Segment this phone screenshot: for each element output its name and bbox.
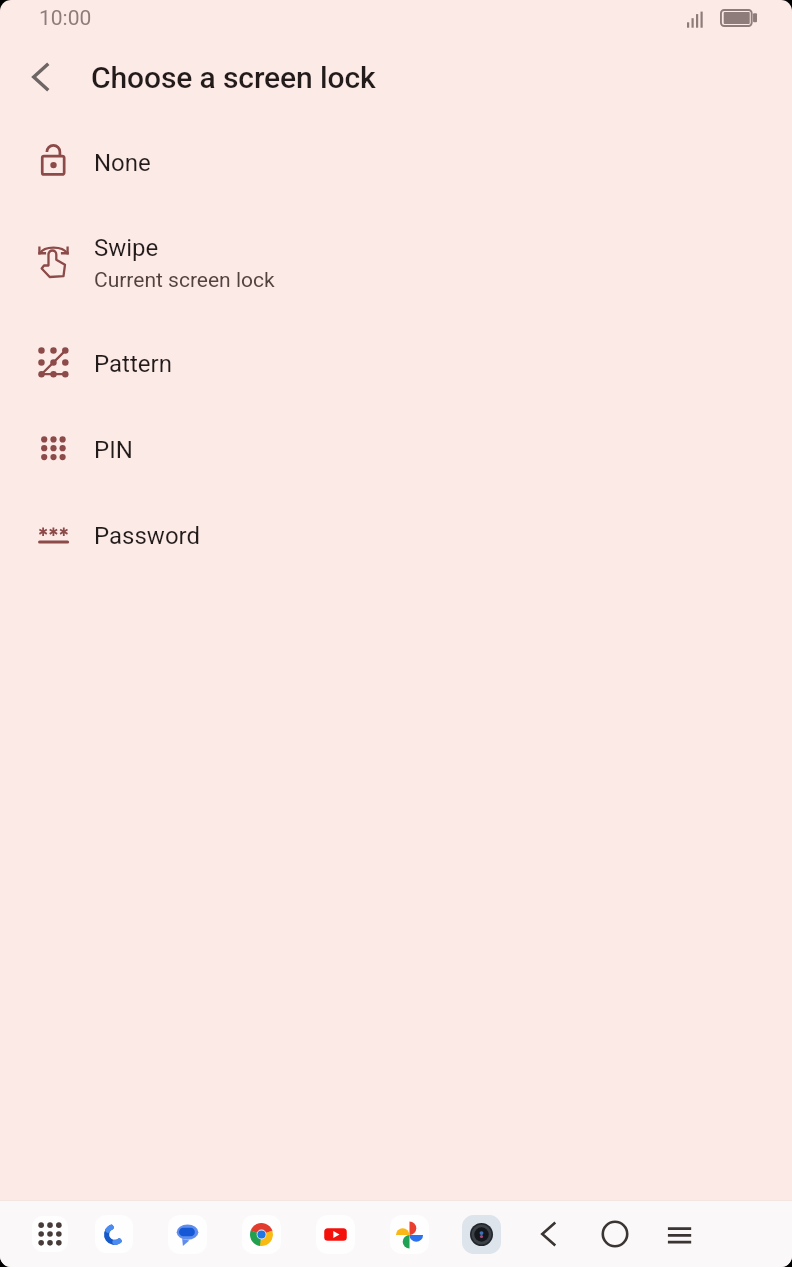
button[interactable]: Phone <box>85 1205 143 1263</box>
button[interactable]: Password <box>0 493 792 579</box>
button[interactable]: YouTube <box>306 1205 364 1263</box>
button[interactable]: Camera <box>452 1205 510 1263</box>
button[interactable]: PIN <box>0 407 792 493</box>
button[interactable]: Messages <box>158 1205 216 1263</box>
button[interactable]: Back <box>18 54 64 100</box>
button[interactable]: Back <box>520 1206 576 1262</box>
staticText: PIN <box>94 436 133 464</box>
button[interactable]: Apps <box>21 1205 79 1263</box>
staticText: Current screen lock <box>94 268 275 293</box>
staticText: Swipe <box>94 234 159 262</box>
staticText: Pattern <box>94 350 172 378</box>
button[interactable]: Home <box>587 1206 643 1262</box>
button[interactable]: Photos <box>380 1205 438 1263</box>
staticText: Choose a screen lock <box>91 60 376 95</box>
button[interactable]: Chrome <box>232 1205 290 1263</box>
staticText: None <box>94 149 151 177</box>
staticText: 10:00 <box>39 6 92 31</box>
staticText: Password <box>94 522 201 550</box>
button[interactable]: None <box>0 120 792 206</box>
button[interactable]: Pattern <box>0 321 792 407</box>
button[interactable]: Swipe <box>0 206 792 321</box>
button[interactable]: Recents <box>652 1206 708 1262</box>
